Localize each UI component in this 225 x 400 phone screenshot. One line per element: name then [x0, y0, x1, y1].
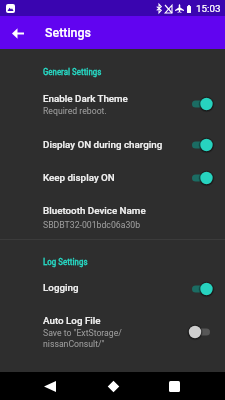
staticText: Settings	[45, 25, 91, 40]
button[interactable]: Disabled	[186, 321, 218, 343]
staticText: Auto Log File	[43, 315, 101, 326]
button[interactable]: Enabled	[186, 278, 218, 300]
staticText: Log Settings	[43, 257, 88, 268]
staticText: Logging	[43, 282, 79, 293]
staticText: Keep display ON	[43, 172, 115, 183]
button[interactable]: Back	[40, 376, 60, 396]
staticText: SBDBT32-001bdc06a30b	[43, 220, 141, 230]
button[interactable]: Navigate up	[6, 21, 30, 45]
button[interactable]: Enabled	[186, 93, 218, 115]
button[interactable]: Enabled	[186, 167, 218, 189]
button[interactable]: Recent apps	[164, 376, 184, 396]
staticText: 15:03	[196, 3, 221, 14]
button[interactable]: Home	[103, 376, 123, 396]
button[interactable]: Enabled	[186, 134, 218, 156]
staticText: Enable Dark Theme	[43, 93, 128, 104]
staticText: Save to "ExtStorage/ nissanConsult/"	[43, 328, 122, 349]
staticText: Required reboot.	[43, 106, 107, 116]
staticText: Display ON during charging	[43, 139, 163, 150]
staticText: Bluetooth Device Name	[43, 205, 146, 216]
staticText: General Settings	[43, 67, 102, 78]
